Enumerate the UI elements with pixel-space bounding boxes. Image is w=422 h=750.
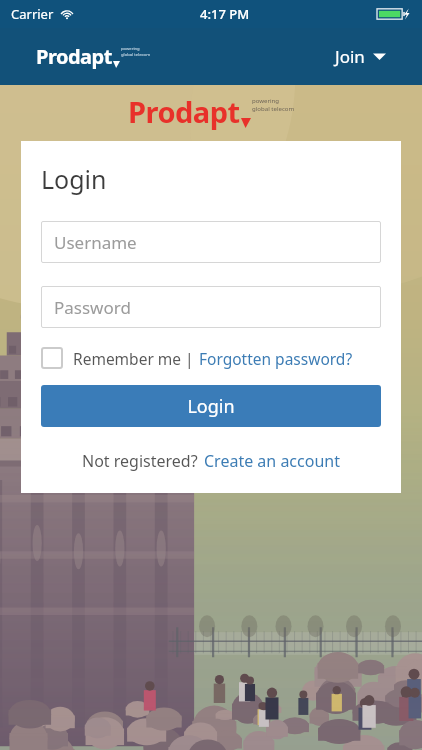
- button[interactable]: Remember me checkbox: [41, 347, 63, 369]
- staticText: Create an account: [204, 450, 340, 472]
- staticText: Login: [41, 162, 107, 196]
- staticText: powering: [121, 46, 140, 52]
- staticText: 4:17 PM: [200, 5, 250, 23]
- staticText: Login: [187, 394, 235, 419]
- button[interactable]: Forgotten password?: [199, 348, 353, 369]
- staticText: Not registered?: [82, 450, 198, 472]
- staticText: Remember me |: [73, 348, 194, 369]
- staticText: Forgotten password?: [199, 348, 353, 369]
- staticText: powering: [252, 96, 280, 104]
- staticText: Username: [54, 231, 137, 254]
- staticText: Carrier: [11, 5, 54, 23]
- button[interactable]: Password: [41, 286, 381, 328]
- staticText: Password: [54, 296, 131, 319]
- staticText: Join: [335, 45, 365, 68]
- staticText: global telecom: [121, 52, 151, 58]
- button[interactable]: Login: [41, 385, 381, 427]
- button[interactable]: Username: [41, 221, 381, 263]
- staticText: global telecom: [252, 104, 295, 112]
- button[interactable]: Create an account: [204, 450, 340, 472]
- staticText: Prodapt: [36, 43, 112, 70]
- staticText: Prodapt: [128, 92, 240, 131]
- button[interactable]: Join: [329, 39, 392, 74]
